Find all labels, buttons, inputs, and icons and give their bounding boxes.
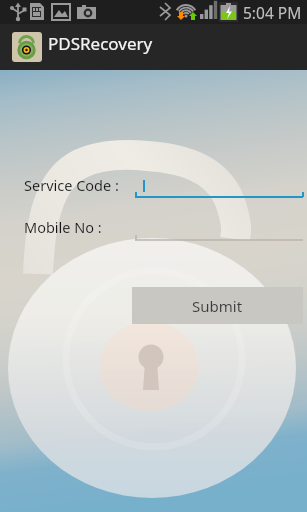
- button[interactable]: Submit: [132, 287, 303, 324]
- staticText: Mobile No :: [24, 217, 102, 237]
- staticText: Service Code :: [24, 175, 119, 195]
- staticText: 5:04 PM: [243, 2, 302, 23]
- staticText: PDSRecovery: [48, 32, 153, 55]
- button[interactable]: App icon: [0, 24, 307, 70]
- staticText: Submit: [192, 296, 243, 316]
- other: App icon: [12, 32, 42, 62]
